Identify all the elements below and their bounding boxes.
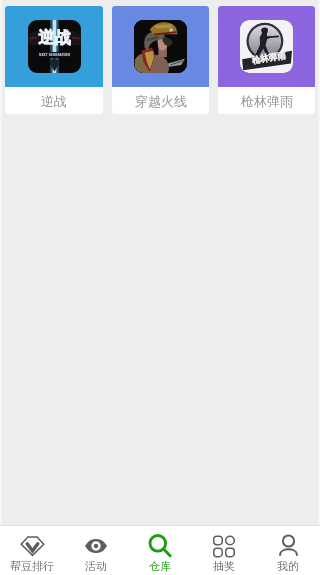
staticText: 我的 <box>277 559 299 573</box>
staticText: 仓库 <box>149 559 171 573</box>
staticText: 穿越火线 <box>135 93 187 109</box>
staticText: 逆战 <box>38 28 71 48</box>
button[interactable]: 抽奖 <box>192 526 256 575</box>
button[interactable]: 仓库 <box>128 526 192 575</box>
other: 活动 <box>85 539 107 553</box>
staticText: 活动 <box>85 559 107 573</box>
other: 抽奖 <box>213 535 235 556</box>
button[interactable]: 帮豆排行 <box>0 526 64 575</box>
staticText: 逆战 <box>41 93 67 109</box>
staticText: 帮豆排行 <box>10 559 54 573</box>
other: 我的 <box>278 535 299 556</box>
staticText: 抽奖 <box>213 559 235 573</box>
button[interactable]: 枪林弹雨 <box>218 6 315 114</box>
button[interactable]: 活动 <box>64 526 128 575</box>
other: 帮豆排行 <box>21 535 44 556</box>
button[interactable]: 我的 <box>256 526 320 575</box>
staticText: 枪林弹雨 <box>251 50 286 66</box>
staticText: NEXT GENERATION <box>39 53 71 57</box>
button[interactable]: 逆战 <box>5 6 103 114</box>
other: 仓库 <box>149 535 171 556</box>
button[interactable]: 穿越火线 <box>112 6 209 114</box>
staticText: 枪林弹雨 <box>241 93 293 109</box>
